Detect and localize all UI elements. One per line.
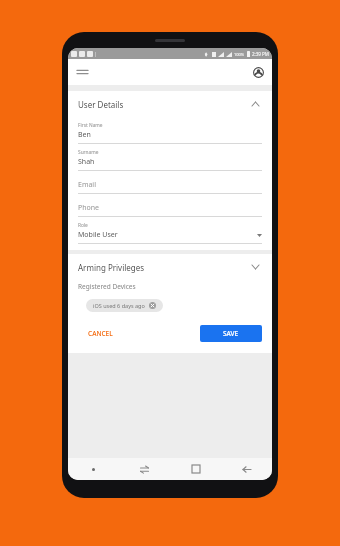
staticText: 100%: [234, 52, 245, 57]
button[interactable]: First Name: [78, 117, 262, 144]
button[interactable]: Email: [78, 171, 262, 194]
staticText: Ben: [78, 130, 91, 140]
staticText: CANCEL: [88, 329, 113, 338]
staticText: Arming Privileges: [78, 262, 145, 273]
staticText: User Details: [78, 99, 124, 110]
staticText: Mobile User: [78, 230, 118, 240]
staticText: SAVE: [223, 329, 239, 338]
staticText: Surname: [78, 149, 99, 156]
staticText: Phone: [78, 203, 100, 213]
button[interactable]: iOS used 6 days ago: [86, 299, 163, 312]
staticText: Registered Devices: [78, 282, 136, 291]
staticText: First Name: [78, 122, 103, 129]
button[interactable]: Role: [78, 217, 262, 244]
button[interactable]: User Details: [78, 91, 262, 117]
button[interactable]: CANCEL: [78, 324, 123, 343]
button[interactable]: Open navigation menu: [74, 64, 90, 80]
button[interactable]: Switch apps: [119, 458, 170, 480]
staticText: Shah: [78, 157, 95, 167]
staticText: Email: [78, 180, 96, 190]
button[interactable]: SAVE: [200, 325, 262, 342]
button[interactable]: Account: [250, 64, 266, 80]
staticText: 2:39 PM: [252, 51, 269, 57]
button[interactable]: Surname: [78, 144, 262, 171]
button[interactable]: Arming Privileges: [78, 254, 262, 280]
button[interactable]: Collapse section: [248, 97, 262, 111]
staticText: iOS used 6 days ago: [93, 302, 145, 309]
button[interactable]: Expand section: [248, 260, 262, 274]
button[interactable]: Back: [221, 458, 272, 480]
button[interactable]: Home: [170, 458, 221, 480]
button[interactable]: Assistant: [68, 458, 119, 480]
staticText: Role: [78, 222, 88, 229]
button[interactable]: Phone: [78, 194, 262, 217]
